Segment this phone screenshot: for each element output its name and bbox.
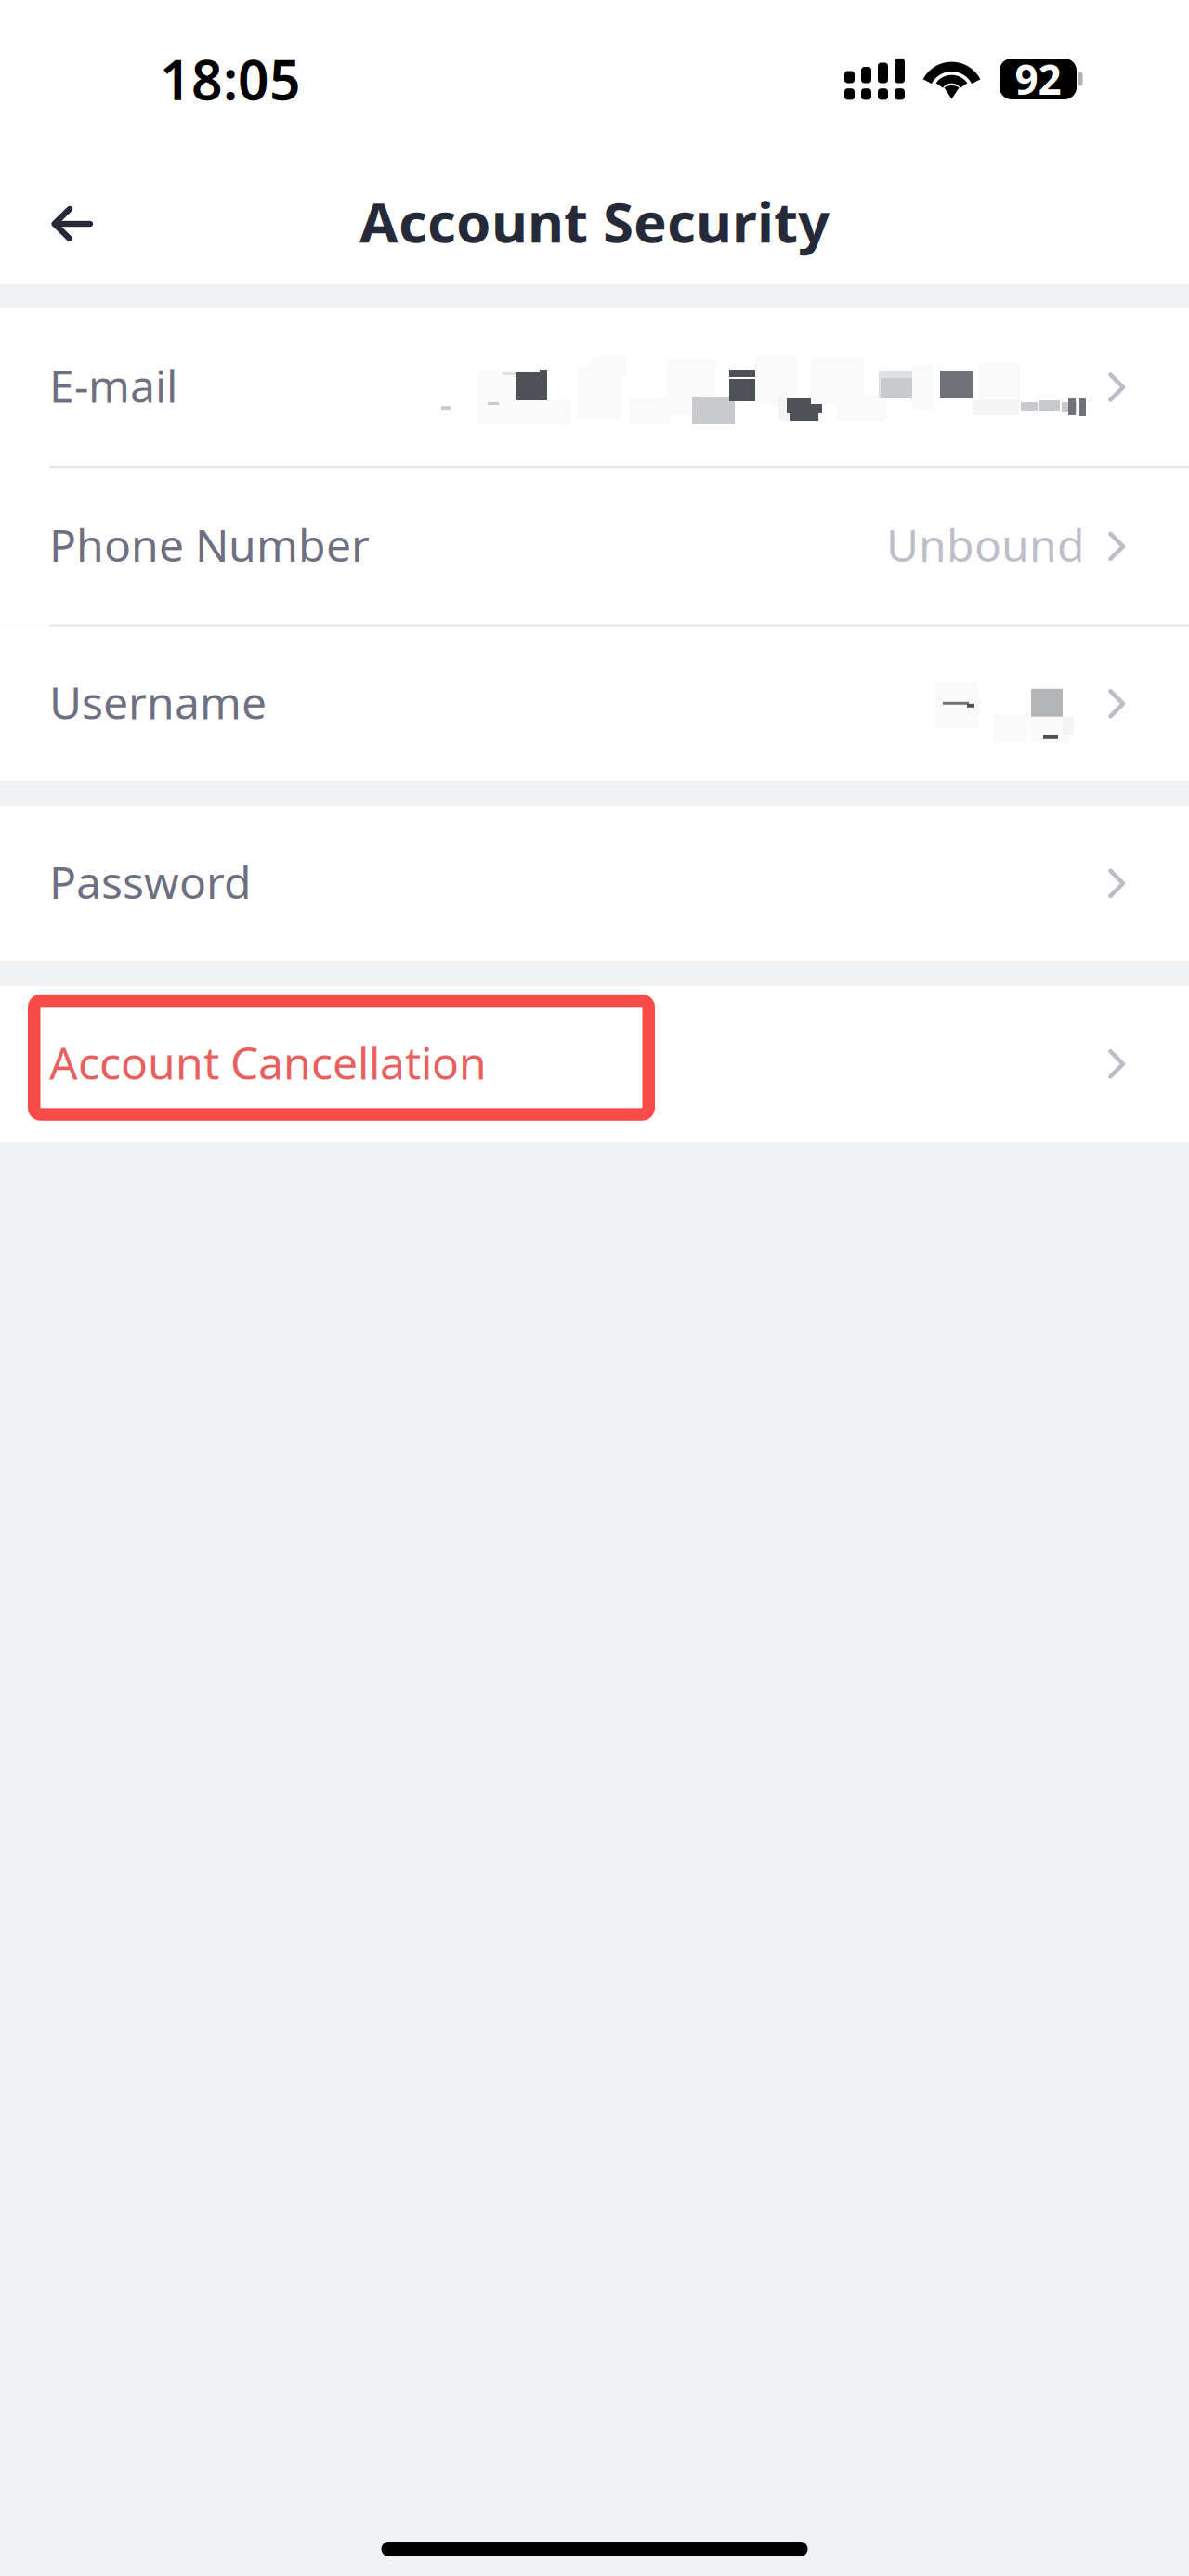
staticText: Phone Number — [49, 515, 370, 574]
button[interactable]: Username — [0, 627, 1189, 781]
button[interactable]: Back — [0, 173, 122, 269]
button[interactable]: Account Cancellation — [0, 986, 1189, 1142]
staticText: Username — [49, 672, 267, 731]
button[interactable]: E-mail — [0, 308, 1189, 466]
staticText: 18:05 — [160, 43, 301, 115]
staticText: Account Security — [359, 184, 830, 258]
staticText: Unbound — [886, 515, 1085, 574]
staticText: E-mail — [49, 356, 177, 415]
staticText: Account Cancellation — [49, 1033, 487, 1092]
staticText: Password — [49, 852, 252, 911]
button[interactable]: Phone Number — [0, 468, 1189, 624]
button[interactable]: Password — [0, 806, 1189, 961]
staticText: 92 — [1015, 52, 1061, 106]
